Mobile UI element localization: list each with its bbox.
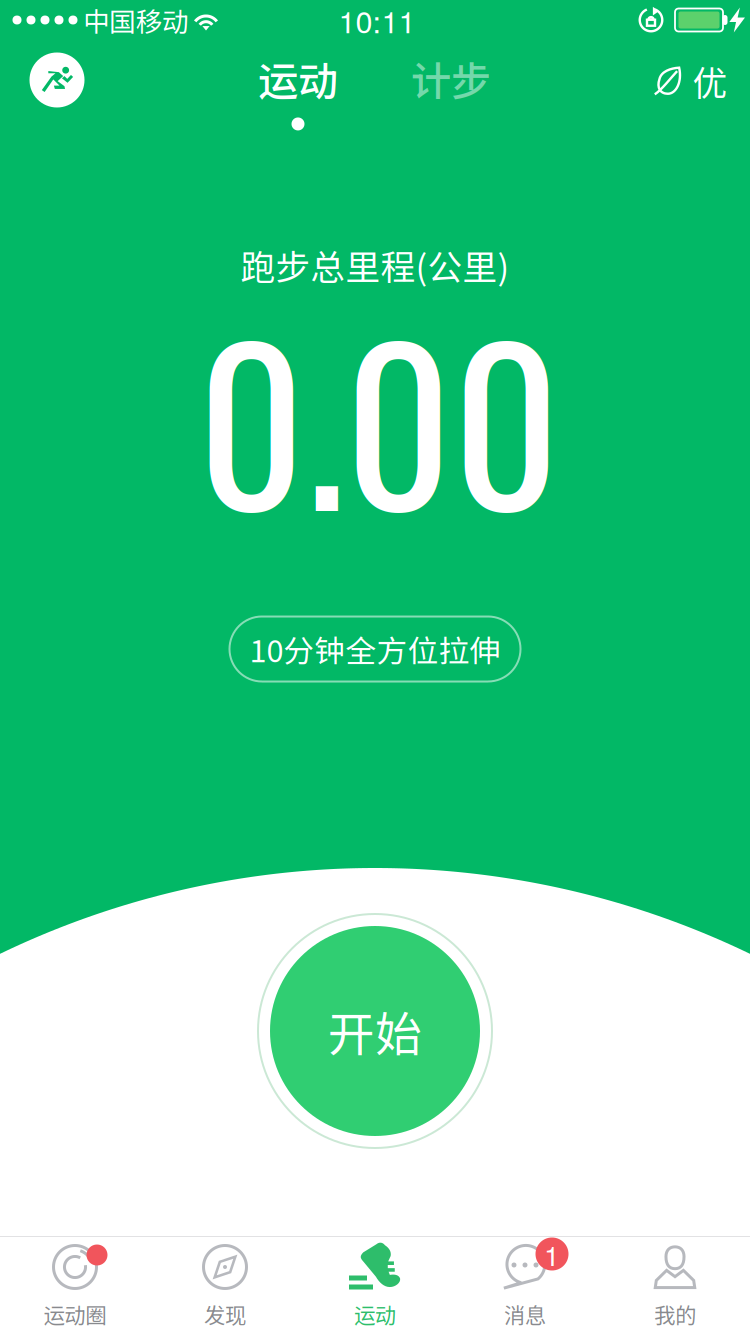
- staticText: 我的: [654, 1299, 696, 1329]
- button[interactable]: 运动圈: [0, 1236, 150, 1334]
- staticText: 开始: [328, 997, 422, 1065]
- staticText: 10:11: [338, 0, 415, 42]
- staticText: 发现: [204, 1299, 246, 1329]
- staticText: 运动圈: [43, 1299, 106, 1329]
- button[interactable]: 开始: [255, 911, 495, 1151]
- staticText: 运动: [258, 49, 338, 107]
- staticText: 跑步总里程(公里): [240, 240, 509, 290]
- button[interactable]: 10分钟全方位拉伸: [229, 616, 520, 681]
- staticText: 1: [544, 1234, 560, 1274]
- staticText: 运动: [354, 1299, 396, 1329]
- button[interactable]: 1: [450, 1236, 600, 1334]
- button[interactable]: 我的: [600, 1236, 750, 1334]
- button[interactable]: 计步: [389, 43, 513, 136]
- button[interactable]: 运动: [236, 43, 360, 136]
- button[interactable]: Profile: [26, 49, 88, 111]
- staticText: 消息: [504, 1299, 546, 1329]
- staticText: 计步: [411, 49, 491, 107]
- staticText: 10分钟全方位拉伸: [249, 627, 500, 671]
- staticText: 中国移动: [83, 1, 189, 39]
- button[interactable]: 运动: [300, 1236, 450, 1334]
- button[interactable]: 发现: [150, 1236, 300, 1334]
- staticText: 0.00: [197, 263, 560, 571]
- staticText: 优: [692, 56, 727, 106]
- button[interactable]: 优: [648, 50, 733, 112]
